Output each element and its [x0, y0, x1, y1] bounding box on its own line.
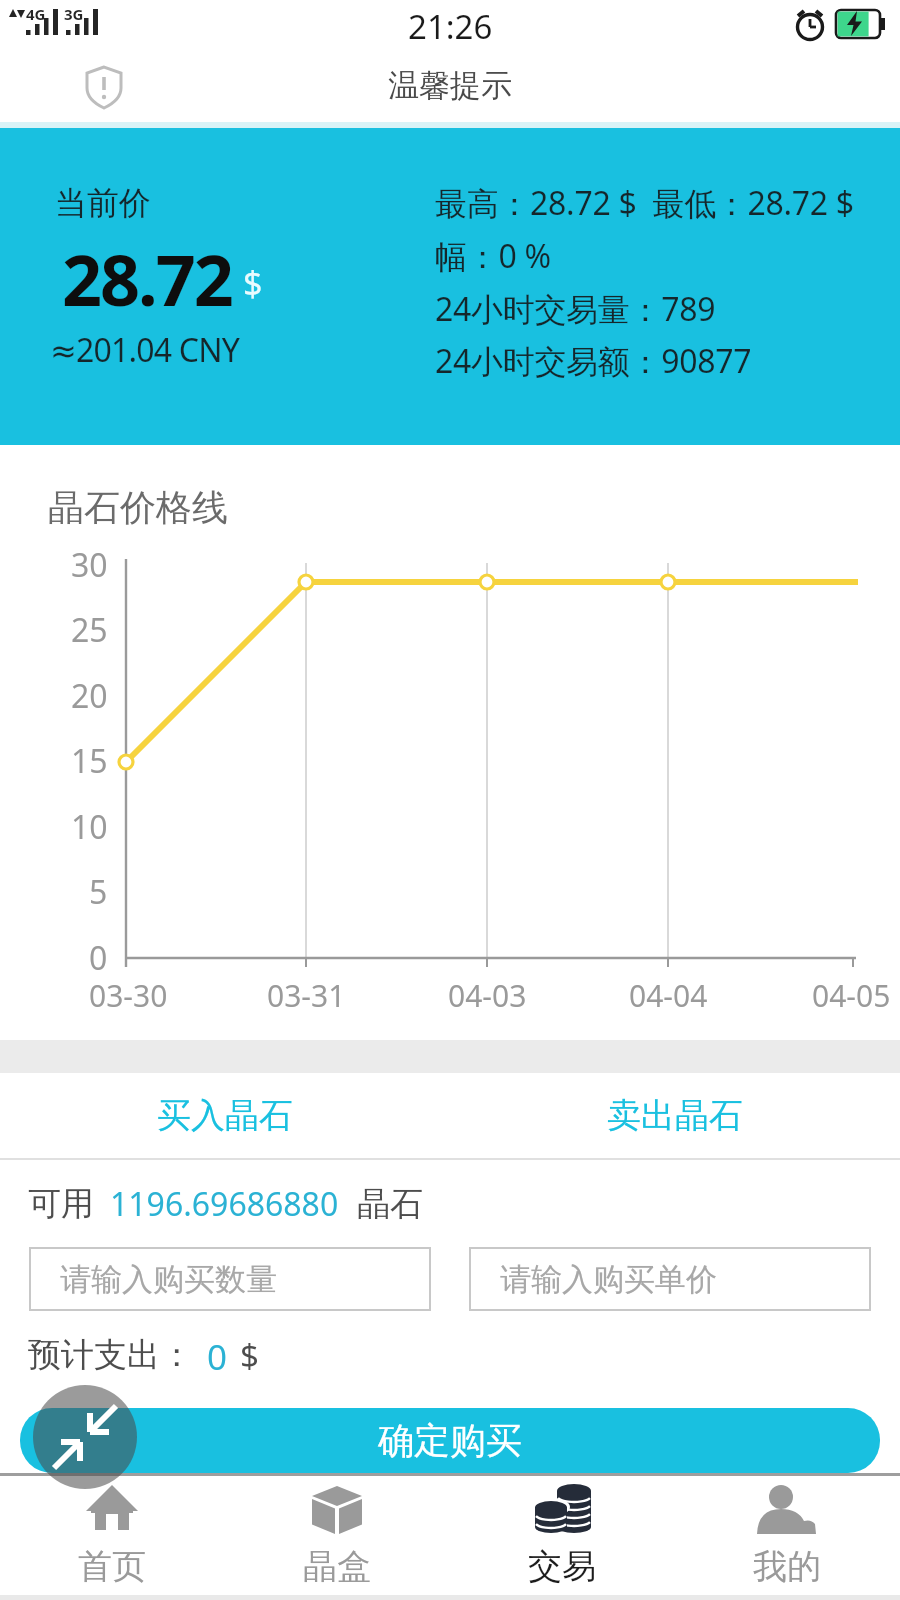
staticText: 28.72 [62, 231, 232, 311]
button[interactable]: 买入晶石 [0, 1073, 450, 1158]
staticText: 24小时交易量：789 [435, 287, 716, 331]
staticText: 幅：0 % [435, 234, 551, 278]
button[interactable]: 我的 [707, 1478, 867, 1598]
staticText: 30 [71, 543, 108, 587]
staticText: 04-03 [448, 975, 527, 1016]
staticText: 3G [64, 4, 84, 24]
staticText: 预计支出： [28, 1334, 193, 1376]
staticText: 25 [71, 608, 108, 652]
staticText: $ [243, 260, 263, 306]
button[interactable]: 卖出晶石 [450, 1073, 900, 1158]
button[interactable] [33, 1385, 137, 1489]
staticText: 我的 [753, 1545, 821, 1588]
button[interactable]: 请输入购买数量 [30, 1248, 430, 1310]
staticText: 15 [71, 739, 108, 783]
staticText: 卖出晶石 [607, 1094, 743, 1137]
staticText: 24小时交易额：90877 [435, 339, 752, 383]
button[interactable]: 请输入购买单价 [470, 1248, 870, 1310]
staticText: 4G [26, 4, 46, 24]
staticText: 1196.69686880 [110, 1182, 339, 1226]
staticText: 温馨提示 [388, 66, 512, 105]
staticText: ≈201.04 CNY [50, 328, 240, 372]
staticText: 交易 [528, 1545, 596, 1588]
button[interactable]: 首页 [32, 1478, 192, 1598]
button[interactable]: 晶盒 [257, 1478, 417, 1598]
staticText: 请输入购买单价 [500, 1260, 717, 1299]
staticText: 首页 [78, 1545, 146, 1588]
staticText: 请输入购买数量 [60, 1260, 277, 1299]
staticText: 晶石价格线 [48, 485, 228, 530]
staticText: 买入晶石 [157, 1094, 293, 1137]
staticText: $ [240, 1333, 259, 1377]
staticText: 03-31 [267, 975, 346, 1016]
staticText: 0 [89, 936, 108, 980]
staticText: 03-30 [89, 975, 168, 1016]
staticText: 04-04 [629, 975, 708, 1016]
staticText: 确定购买 [378, 1418, 522, 1463]
staticText: 20 [71, 674, 108, 718]
staticText: 可用 [28, 1183, 94, 1225]
staticText: 当前价 [55, 183, 151, 223]
staticText: 最高：28.72 $ 最低：28.72 $ [435, 181, 854, 225]
staticText: 5 [89, 870, 108, 914]
staticText: 晶石 [357, 1183, 423, 1225]
staticText: 10 [71, 805, 108, 849]
staticText: 04-05 [812, 975, 891, 1016]
button[interactable]: 交易 [482, 1478, 642, 1598]
button[interactable]: 确定购买 [20, 1408, 880, 1473]
staticText: 晶盒 [303, 1545, 371, 1588]
staticText: 21:26 [408, 4, 493, 49]
staticText: 0 [207, 1333, 228, 1377]
